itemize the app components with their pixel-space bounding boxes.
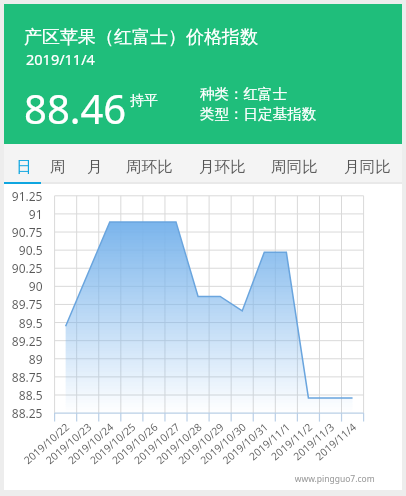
staticText: 月 xyxy=(87,157,103,177)
staticText: 产区苹果（红富士）价格指数 xyxy=(24,26,258,49)
button[interactable]: 月 xyxy=(79,144,111,184)
button[interactable]: 周 xyxy=(42,144,74,184)
staticText: 类型：日定基指数 xyxy=(200,105,316,123)
staticText: 周 xyxy=(50,157,66,177)
button[interactable]: 月环比 xyxy=(189,144,255,184)
staticText: 月环比 xyxy=(199,157,246,177)
staticText: 2019/11/4 xyxy=(26,49,95,69)
button[interactable]: 日 xyxy=(8,144,39,184)
staticText: 种类：红富士 xyxy=(200,85,287,103)
button[interactable]: 周同比 xyxy=(262,144,327,184)
staticText: 周环比 xyxy=(126,157,173,177)
staticText: 88.46 xyxy=(24,81,127,135)
staticText: 持平 xyxy=(130,92,158,110)
staticText: 月同比 xyxy=(344,157,391,177)
staticText: 日 xyxy=(16,157,32,177)
button[interactable]: 周环比 xyxy=(117,144,182,184)
staticText: 周同比 xyxy=(271,157,318,177)
button[interactable]: 月同比 xyxy=(334,144,400,184)
